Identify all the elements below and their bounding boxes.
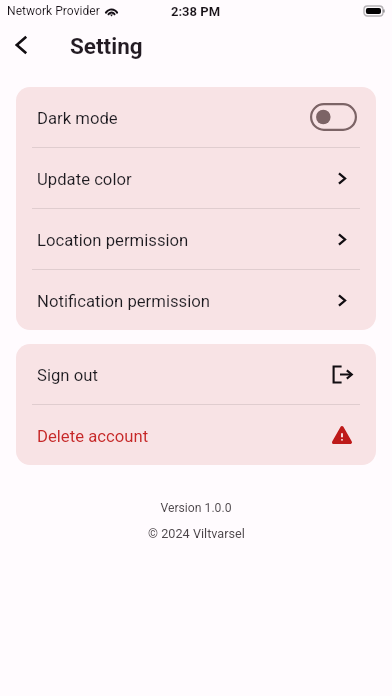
staticText: Version 1.0.0 <box>160 501 232 515</box>
staticText: Update color <box>37 170 132 190</box>
staticText: Location permission <box>37 231 189 251</box>
staticText: Delete account <box>37 427 149 447</box>
button[interactable]: Sign out <box>16 344 376 404</box>
button[interactable]: Sign out <box>332 366 352 383</box>
button[interactable]: Dark mode toggle <box>310 102 357 132</box>
staticText: Notification permission <box>37 292 210 312</box>
button[interactable]: Delete account <box>332 426 352 444</box>
button[interactable]: Update color <box>16 148 376 208</box>
staticText: © 2024 Viltvarsel <box>148 526 245 541</box>
button[interactable]: Location permission <box>16 209 376 269</box>
staticText: Setting <box>70 33 143 59</box>
staticText: Dark mode <box>37 109 118 129</box>
button[interactable]: Delete account <box>16 405 376 465</box>
button[interactable]: Notification permission <box>16 270 376 330</box>
staticText: Network Provider <box>7 4 100 18</box>
button[interactable]: Back <box>3 27 39 63</box>
staticText: Sign out <box>37 366 98 386</box>
staticText: 2:38 PM <box>171 4 221 19</box>
button[interactable]: Dark mode <box>16 87 376 147</box>
